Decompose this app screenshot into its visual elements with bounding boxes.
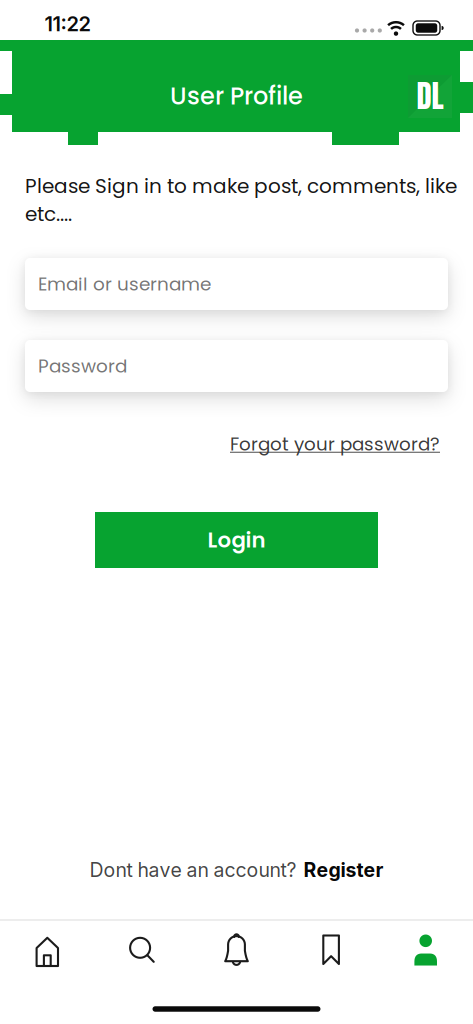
staticText: User Profile — [170, 79, 303, 113]
staticText: Login — [207, 525, 265, 555]
staticText: Password — [38, 353, 127, 379]
button[interactable]: Notifications — [204, 922, 268, 978]
button[interactable]: Register — [303, 858, 383, 882]
staticText: Dont have an account? — [89, 858, 296, 882]
staticText: Forgot your password? — [230, 431, 440, 457]
button[interactable]: Forgot your password? — [230, 431, 440, 457]
button[interactable]: Email or username — [25, 258, 448, 310]
staticText: Register — [303, 858, 383, 882]
button[interactable]: Search — [110, 922, 174, 978]
button[interactable]: Password — [25, 340, 448, 392]
staticText: Email or username — [38, 271, 211, 297]
staticText: Please Sign in to make post, comments, l… — [25, 172, 457, 228]
button[interactable]: Login — [95, 512, 378, 568]
button[interactable]: Home — [15, 922, 79, 978]
button[interactable]: Profile — [394, 922, 458, 978]
button[interactable]: Bookmarks — [299, 922, 363, 978]
staticText: DL — [416, 73, 443, 119]
staticText: 11:22 — [44, 12, 90, 36]
